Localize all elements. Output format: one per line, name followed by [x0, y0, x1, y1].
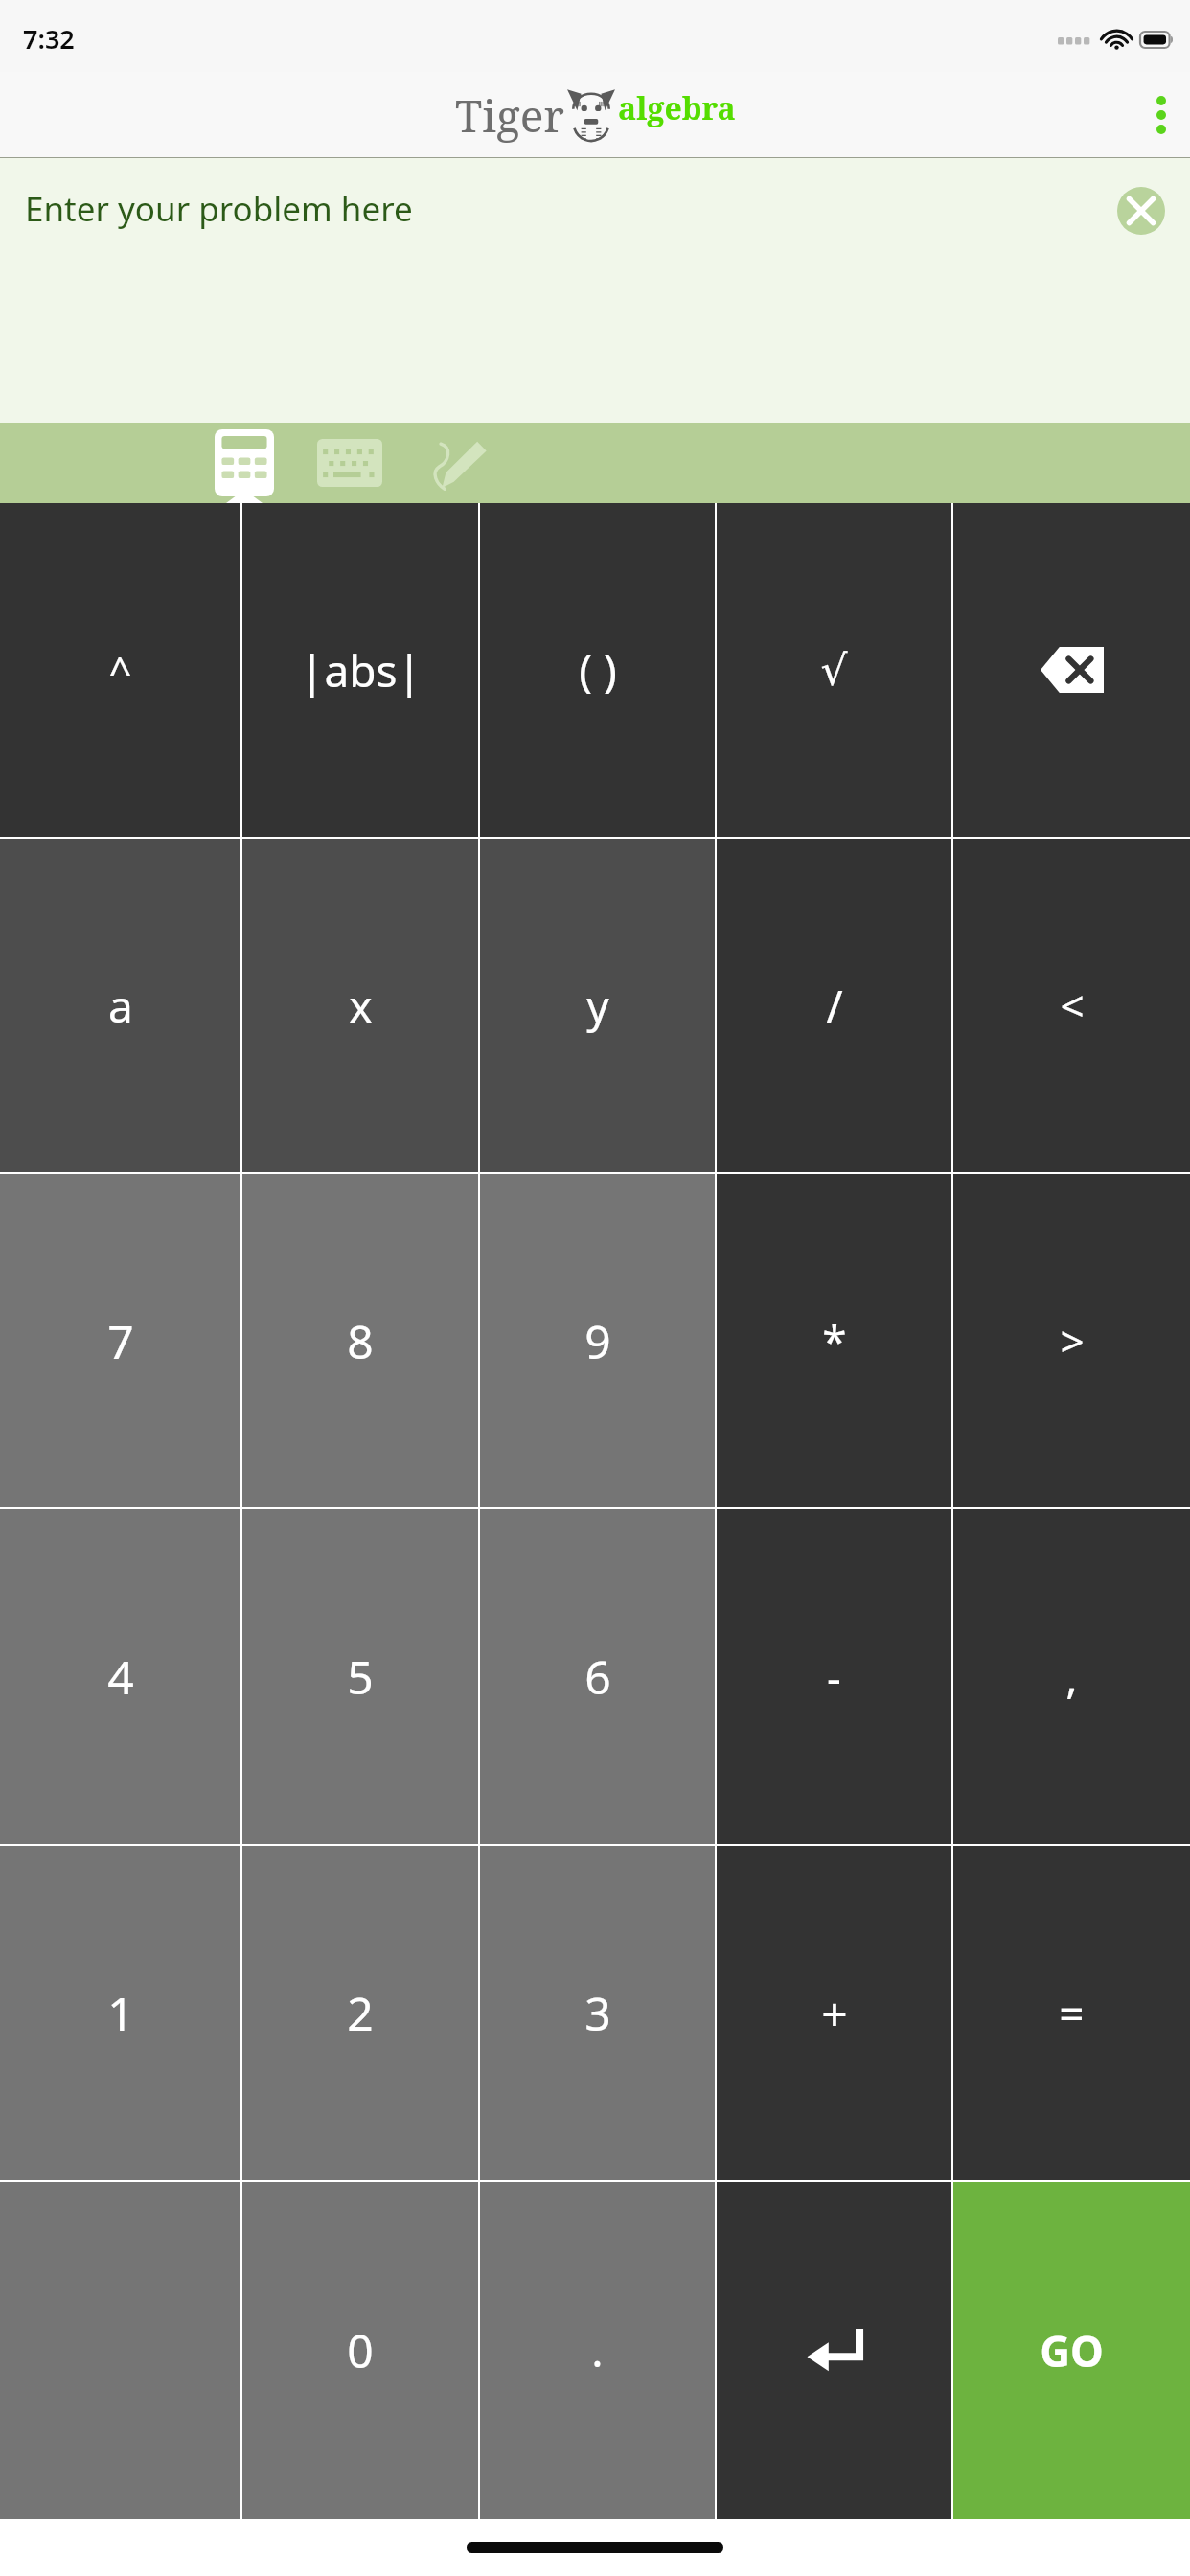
staticText: < — [1060, 977, 1085, 1034]
button[interactable]: / — [717, 839, 951, 1172]
button[interactable]: 8 — [242, 1174, 478, 1507]
staticText: . — [591, 2320, 604, 2380]
button[interactable]: > — [953, 1174, 1190, 1507]
button[interactable]: Handwriting input — [402, 423, 508, 503]
staticText: 4 — [107, 1645, 134, 1708]
button[interactable]: + — [717, 1846, 951, 2180]
button[interactable]: 5 — [242, 1509, 478, 1844]
staticText: , — [1065, 1646, 1078, 1707]
button[interactable]: ^ — [0, 503, 240, 837]
button[interactable]: Clear — [1110, 179, 1173, 242]
staticText: 0 — [347, 2319, 374, 2381]
button[interactable]: 3 — [480, 1846, 715, 2180]
staticText: GO — [1040, 2322, 1104, 2380]
button[interactable]: √ — [717, 503, 951, 837]
staticText: - — [827, 1646, 841, 1707]
staticText: / — [826, 976, 843, 1036]
button[interactable]: x — [242, 839, 478, 1172]
staticText: 3 — [584, 1982, 611, 2044]
staticText: Tiger — [455, 85, 564, 146]
button[interactable]: More options — [1133, 86, 1190, 144]
button[interactable]: ( ) — [480, 503, 715, 837]
button[interactable]: |abs| — [242, 503, 478, 837]
staticText: ( ) — [579, 640, 617, 701]
staticText: algebra — [618, 87, 736, 129]
button[interactable]: < — [953, 839, 1190, 1172]
staticText: > — [1060, 1312, 1085, 1369]
button[interactable]: 1 — [0, 1846, 240, 2180]
button[interactable]: 9 — [480, 1174, 715, 1507]
staticText: |abs| — [300, 640, 422, 701]
button[interactable]: y — [480, 839, 715, 1172]
staticText: y — [586, 976, 609, 1036]
staticText: 7 — [107, 1310, 134, 1372]
staticText: + — [821, 1982, 848, 2044]
staticText: a — [108, 976, 133, 1036]
staticText: x — [349, 976, 373, 1036]
staticText: 9 — [584, 1310, 611, 1372]
button[interactable]: Text keyboard — [297, 423, 402, 503]
button[interactable]: Calculator keypad — [192, 423, 297, 503]
button[interactable]: 0 — [242, 2182, 478, 2518]
button[interactable]: a — [0, 839, 240, 1172]
staticText: 1 — [107, 1982, 134, 2044]
button[interactable]: , — [953, 1509, 1190, 1844]
button[interactable]: Backspace — [953, 503, 1190, 837]
staticText: 7:32 — [23, 21, 75, 57]
staticText: * — [822, 1311, 847, 1371]
button[interactable]: GO — [953, 2182, 1190, 2518]
staticText: 6 — [584, 1645, 611, 1708]
staticText: ^ — [108, 643, 132, 698]
staticText: Enter your problem here — [25, 186, 413, 232]
staticText: 2 — [347, 1982, 374, 2044]
button[interactable] — [0, 2182, 240, 2518]
staticText: 8 — [347, 1310, 374, 1372]
button[interactable]: - — [717, 1509, 951, 1844]
button[interactable]: Enter — [717, 2182, 951, 2518]
button[interactable]: 6 — [480, 1509, 715, 1844]
button[interactable]: 4 — [0, 1509, 240, 1844]
staticText: 5 — [347, 1645, 374, 1708]
staticText: √ — [820, 646, 848, 695]
button[interactable]: . — [480, 2182, 715, 2518]
button[interactable]: 2 — [242, 1846, 478, 2180]
button[interactable]: 7 — [0, 1174, 240, 1507]
button[interactable]: * — [717, 1174, 951, 1507]
staticText: = — [1059, 1983, 1085, 2043]
button[interactable]: = — [953, 1846, 1190, 2180]
